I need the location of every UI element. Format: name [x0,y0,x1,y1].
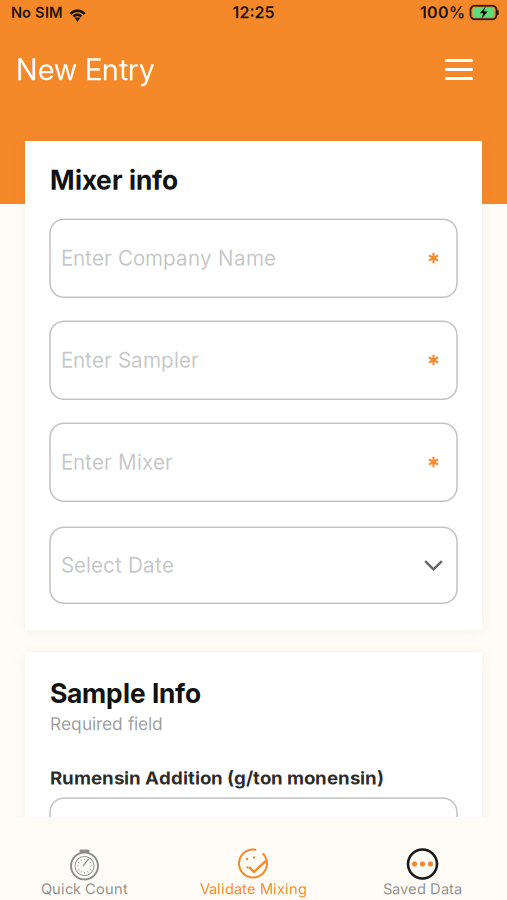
staticText: Enter Company Name [61,246,276,271]
button[interactable]: Quick Count [0,847,169,897]
staticText: Enter Sampler [61,348,199,373]
staticText: 100% [420,3,465,22]
button[interactable]: Validate Mixing [169,847,338,897]
staticText: Mixer info [50,164,178,196]
staticText: Rumensin Addition (g/ton monensin) [50,766,384,789]
staticText: Quick Count [41,880,128,898]
button[interactable]: Saved Data [338,847,507,897]
staticText: 12:25 [232,3,274,22]
staticText: Enter Mixer [61,450,173,475]
staticText: No SIM [11,4,63,21]
button[interactable] [50,798,457,876]
staticText: New Entry [16,52,155,87]
staticText: Saved Data [383,880,462,898]
staticText: Validate Mixing [200,880,307,898]
button[interactable]: Enter Sampler [50,321,457,399]
button[interactable]: Select Date [50,527,457,603]
staticText: Sample Info [50,677,201,710]
button[interactable]: Enter Company Name [50,219,457,297]
staticText: Required field [50,713,163,734]
staticText: Select Date [61,553,174,578]
button[interactable]: Menu [433,47,485,92]
button[interactable]: Enter Mixer [50,423,457,501]
